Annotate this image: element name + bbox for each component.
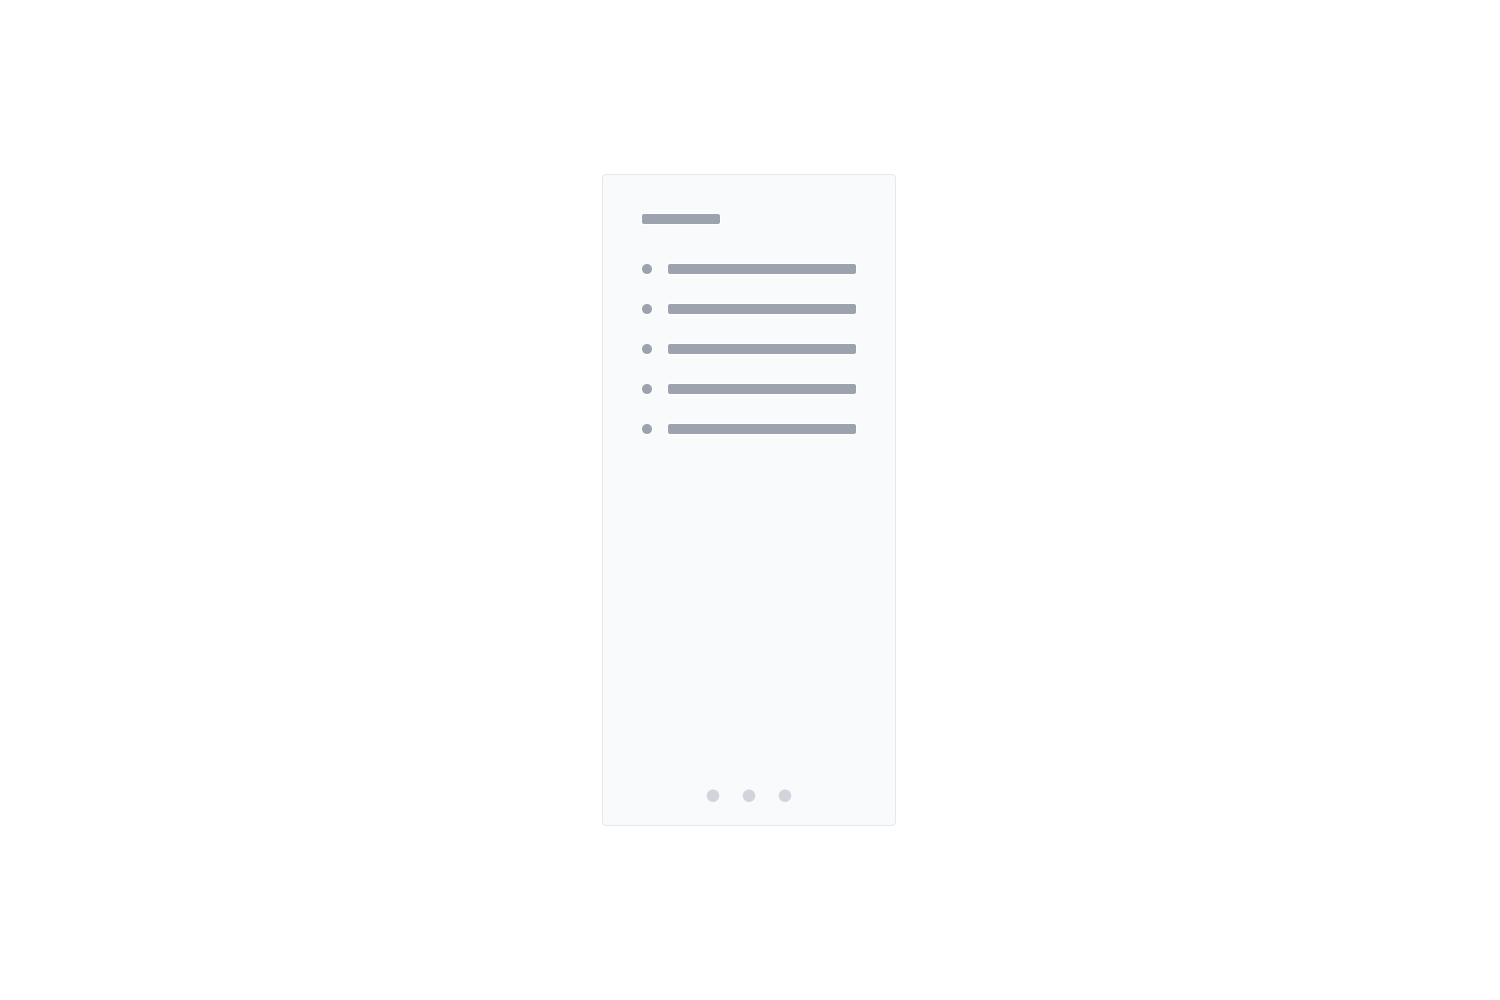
button[interactable]: Loading item (642, 264, 856, 274)
button[interactable]: Loading item (642, 424, 856, 434)
button[interactable]: Page (743, 789, 755, 802)
button[interactable]: Page (779, 789, 791, 802)
button[interactable]: Loading item (642, 384, 856, 394)
button[interactable]: Page (707, 789, 719, 802)
button[interactable]: Loading item (642, 304, 856, 314)
button[interactable]: Loading item (642, 344, 856, 354)
